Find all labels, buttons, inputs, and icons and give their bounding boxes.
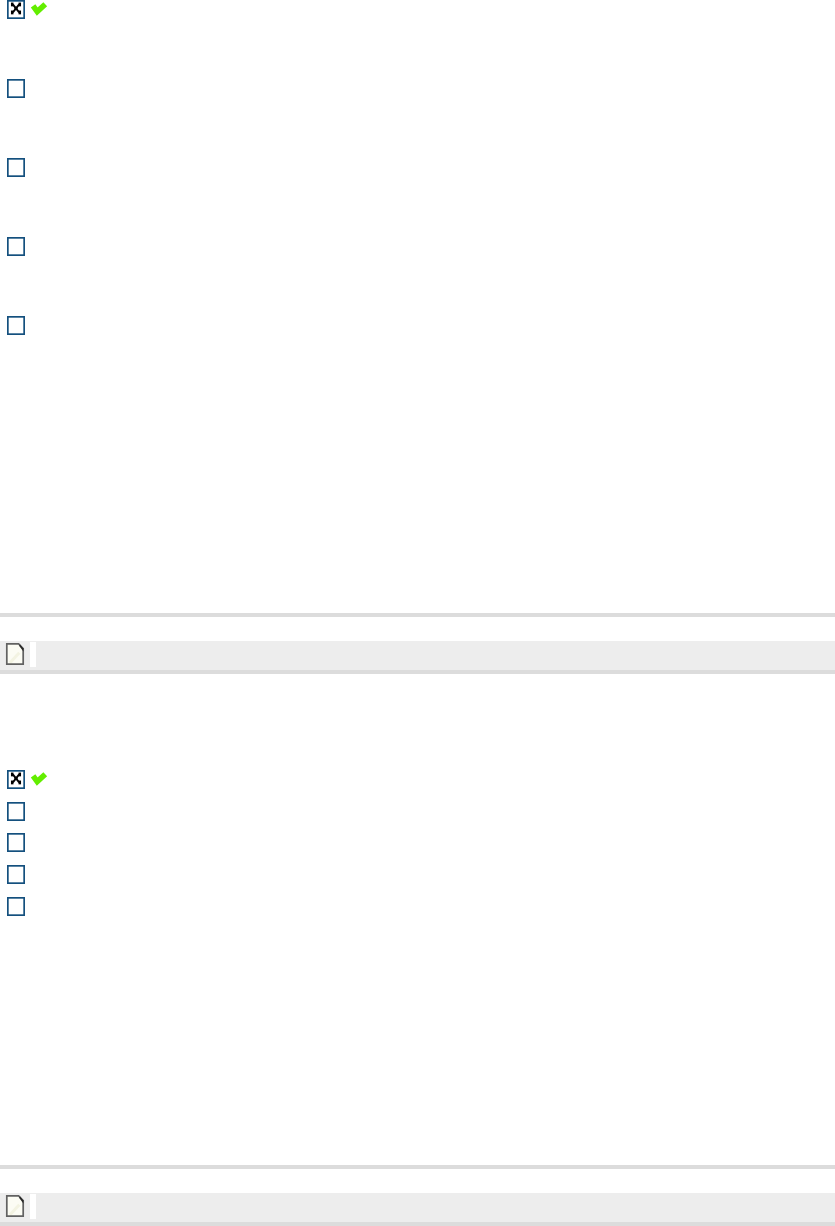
button[interactable]: Choose file: [6, 1195, 24, 1217]
button[interactable]: Broken image placeholder: [7, 865, 25, 884]
button[interactable]: Broken image placeholder: [7, 833, 25, 852]
button[interactable]: Broken image placeholder: [7, 237, 25, 256]
button[interactable]: Broken image placeholder: [7, 802, 25, 821]
button[interactable]: Broken image placeholder: [7, 158, 25, 177]
button[interactable]: Choose file: [6, 643, 24, 665]
button[interactable]: Broken image placeholder: [7, 316, 25, 335]
button[interactable]: Broken image placeholder: [7, 897, 25, 916]
button[interactable]: Broken image placeholder: [7, 79, 25, 98]
button[interactable]: Broken image placeholder: [7, 0, 25, 19]
button[interactable]: Broken image placeholder: [7, 770, 25, 789]
